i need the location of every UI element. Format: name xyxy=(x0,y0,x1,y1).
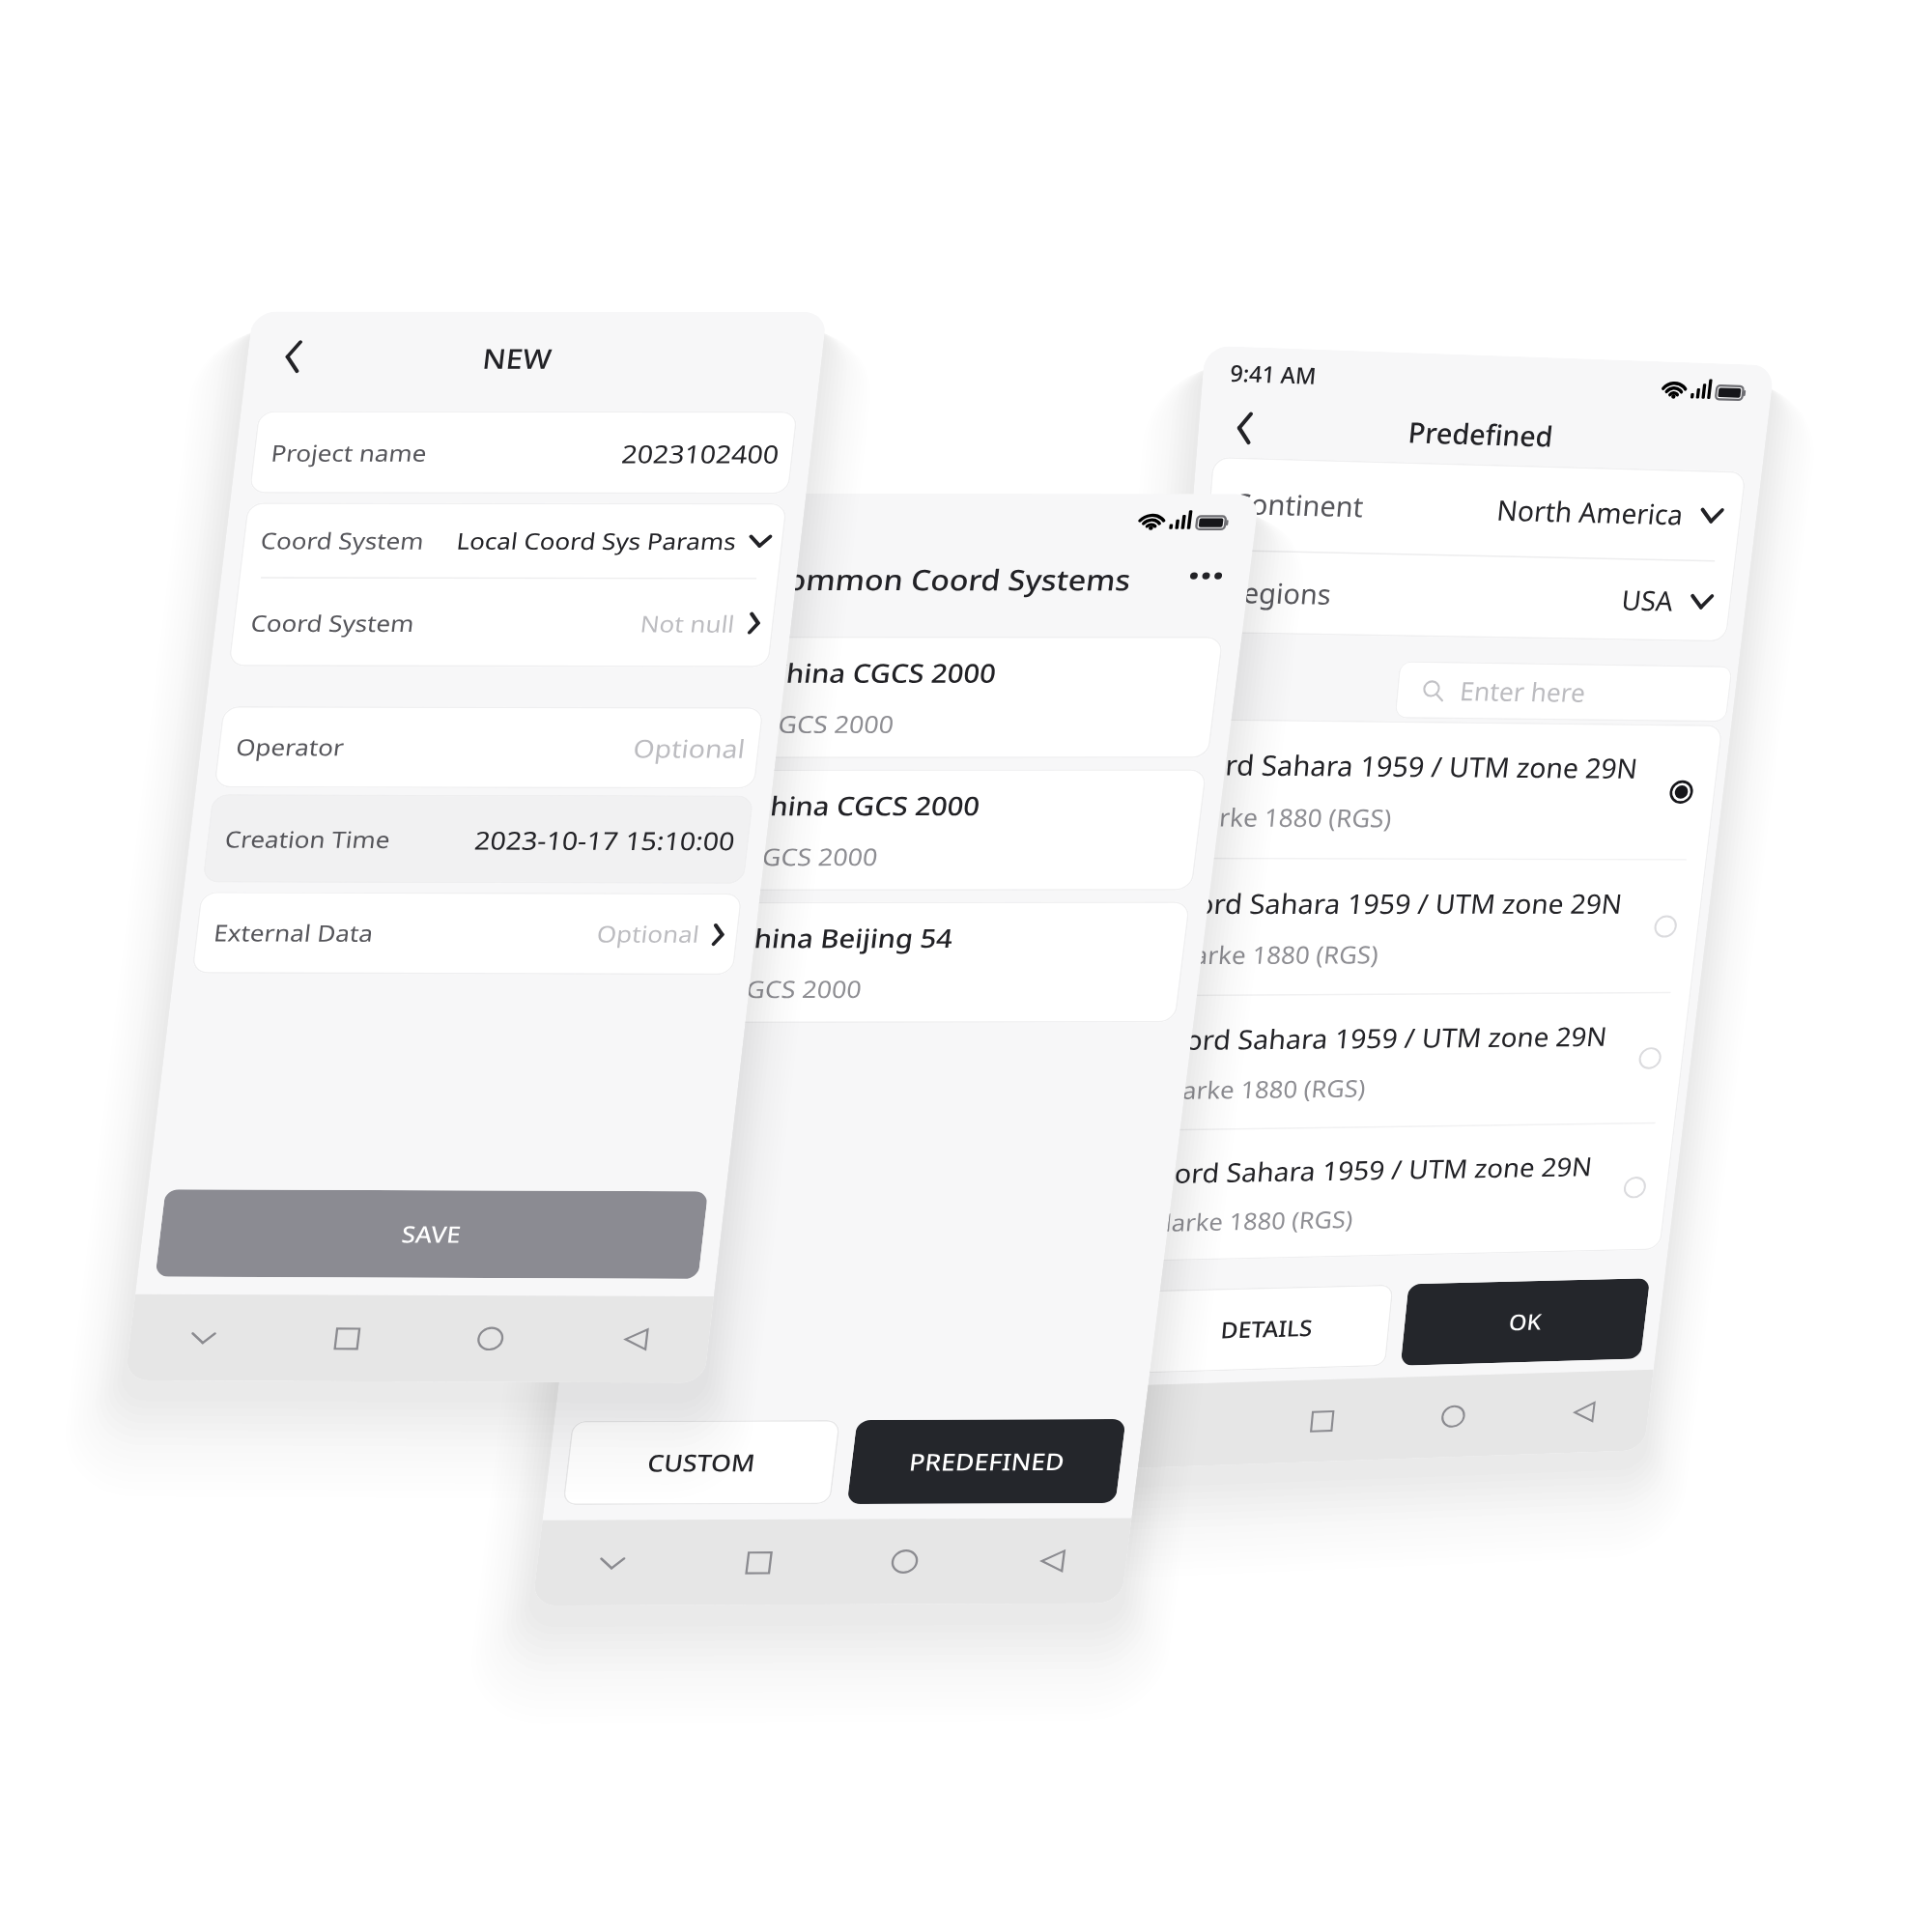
button[interactable]: Home xyxy=(464,1317,517,1360)
staticText: NEW xyxy=(481,340,554,377)
staticText: CGCS 2000 xyxy=(761,708,897,740)
button[interactable]: Project name xyxy=(249,411,798,494)
staticText: Coord System xyxy=(259,525,426,556)
button[interactable]: Back xyxy=(1026,1539,1079,1583)
staticText: North America xyxy=(1495,491,1686,534)
staticText: Nord Sahara 1959 / UTM zone 29N xyxy=(1152,1148,1594,1192)
button[interactable]: PREDEFINED xyxy=(847,1419,1126,1504)
button[interactable]: Recents xyxy=(731,1540,785,1584)
button[interactable]: Regions xyxy=(1199,551,1736,642)
staticText: China CGCS 2000 xyxy=(767,655,999,690)
button[interactable]: CUSTOM xyxy=(562,1420,841,1505)
button[interactable]: DETAILS xyxy=(1139,1284,1394,1373)
staticText: DETAILS xyxy=(1220,1312,1314,1345)
staticText: Regions xyxy=(1224,573,1333,613)
button[interactable]: Nord Sahara 1959 / UTM zone 29N xyxy=(1167,719,1723,859)
staticText: Project name xyxy=(270,438,429,468)
staticText: CGCS 2000 xyxy=(729,973,865,1005)
staticText: Optional xyxy=(631,731,748,765)
staticText: Local Coord Sys Params xyxy=(455,525,739,556)
staticText: 2023102400 xyxy=(620,437,782,470)
button[interactable]: Nord Sahara 1959 / UTM zone 29N xyxy=(1135,1123,1675,1261)
button[interactable]: Enter here xyxy=(1394,661,1733,722)
staticText: Optional xyxy=(595,918,701,949)
staticText: Clarke 1880 (RGS) xyxy=(1159,1071,1367,1106)
staticText: Predefined xyxy=(1406,413,1556,456)
staticText: OK xyxy=(1507,1307,1544,1337)
staticText: External Data xyxy=(212,917,375,948)
staticText: Not null xyxy=(639,608,737,639)
staticText: Continent xyxy=(1231,484,1366,526)
staticText: Common Coord Systems xyxy=(765,559,1134,599)
button[interactable]: Back xyxy=(1219,404,1268,450)
staticText: Operator xyxy=(234,732,346,762)
staticText: Clarke 1880 (RGS) xyxy=(1148,1202,1355,1239)
button[interactable]: Back xyxy=(610,1318,662,1361)
button[interactable]: Operator xyxy=(214,706,764,789)
button[interactable]: Recents xyxy=(320,1316,373,1360)
button[interactable]: Coord System xyxy=(228,578,779,667)
button[interactable]: Hide keyboard xyxy=(586,1542,637,1583)
button[interactable]: External Data xyxy=(191,892,742,975)
staticText: CUSTOM xyxy=(646,1446,757,1479)
button[interactable]: Creation Time xyxy=(202,794,754,884)
button[interactable]: Home xyxy=(878,1540,932,1584)
staticText: CGCS 2000 xyxy=(745,841,881,873)
staticText: Nord Sahara 1959 / UTM zone 29N xyxy=(1163,1018,1609,1058)
staticText: Clarke 1880 (RGS) xyxy=(1181,799,1394,834)
button[interactable]: Home xyxy=(1430,1395,1477,1437)
button[interactable]: China CGCS 2000 xyxy=(652,636,1224,758)
staticText: Enter here xyxy=(1458,673,1588,710)
staticText: PREDEFINED xyxy=(907,1445,1067,1478)
staticText: Nord Sahara 1959 / UTM zone 29N xyxy=(1174,884,1624,922)
button[interactable]: Nord Sahara 1959 / UTM zone 29N xyxy=(1146,993,1691,1130)
staticText: Clarke 1880 (RGS) xyxy=(1170,937,1380,971)
staticText: USA xyxy=(1620,581,1676,620)
button[interactable]: Nord Sahara 1959 / UTM zone 29N xyxy=(1156,859,1707,995)
button[interactable]: Recents xyxy=(1298,1399,1345,1442)
button[interactable]: Back xyxy=(265,334,321,379)
staticText: China CGCS 2000 xyxy=(751,787,983,822)
button[interactable]: OK xyxy=(1401,1278,1650,1366)
button[interactable]: China CGCS 2000 xyxy=(636,769,1207,891)
staticText: Nord Sahara 1959 / UTM zone 29N xyxy=(1185,745,1640,787)
staticText: Coord System xyxy=(249,608,416,639)
button[interactable]: Back xyxy=(1561,1391,1608,1433)
staticText: Creation Time xyxy=(223,824,392,855)
button[interactable]: Continent xyxy=(1205,457,1746,561)
button[interactable]: More options xyxy=(1180,554,1231,596)
staticText: China Beijing 54 xyxy=(735,920,956,955)
button[interactable]: Coord System xyxy=(239,503,787,578)
staticText: SAVE xyxy=(400,1218,463,1250)
button[interactable]: Hide keyboard xyxy=(178,1317,227,1358)
button[interactable]: China Beijing 54 xyxy=(620,902,1190,1023)
staticText: 2023-10-17 15:10:00 xyxy=(473,823,737,857)
button[interactable]: SAVE xyxy=(155,1189,708,1279)
staticText: 9:41 AM xyxy=(1229,357,1318,390)
